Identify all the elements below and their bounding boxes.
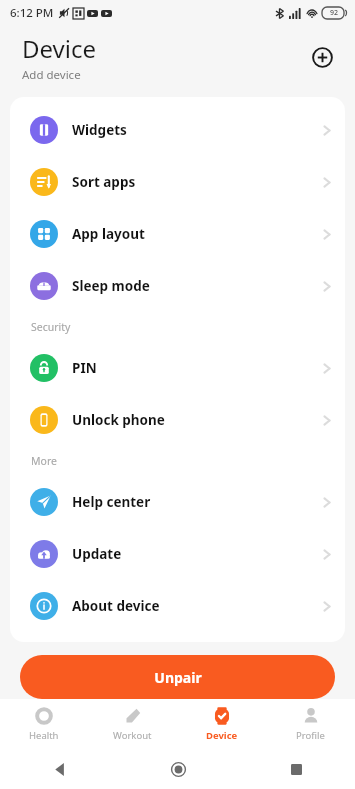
button[interactable]: Sleep mode [10,260,345,312]
staticText: Device [206,729,238,742]
button[interactable]: About device [10,580,345,632]
staticText: Sleep mode [72,277,150,295]
button[interactable]: Unlock phone [10,394,345,446]
staticText: 6:12 PM [10,5,54,21]
staticText: PIN [72,359,97,377]
button[interactable]: Workout [88,699,177,749]
staticText: Workout [113,729,152,742]
button[interactable]: Sort apps [10,156,345,208]
staticText: Update [72,545,122,563]
button[interactable]: Health [0,699,88,749]
staticText: Profile [296,729,325,742]
button[interactable]: Profile [266,699,355,749]
staticText: Security [31,320,71,334]
button[interactable]: Home [161,752,195,786]
staticText: About device [72,597,160,615]
staticText: Health [29,729,59,742]
button[interactable]: Back [43,752,77,786]
button[interactable]: App layout [10,208,345,260]
button[interactable]: Device [177,699,266,749]
staticText: Unpair [154,668,202,687]
staticText: Widgets [72,121,127,139]
staticText: 92 [330,8,339,18]
staticText: Device [22,32,97,65]
staticText: Sort apps [72,173,136,191]
button[interactable]: Update [10,528,345,580]
button[interactable]: Help center [10,476,345,528]
staticText: More [31,454,57,468]
button[interactable]: Unpair [20,655,335,699]
staticText: Help center [72,493,151,511]
button[interactable]: Recent apps [279,752,313,786]
staticText: Unlock phone [72,411,165,429]
staticText: Add device [22,67,81,83]
staticText: App layout [72,225,145,243]
button[interactable]: PIN [10,342,345,394]
button[interactable]: Add device [305,40,339,74]
button[interactable]: Widgets [10,104,345,156]
